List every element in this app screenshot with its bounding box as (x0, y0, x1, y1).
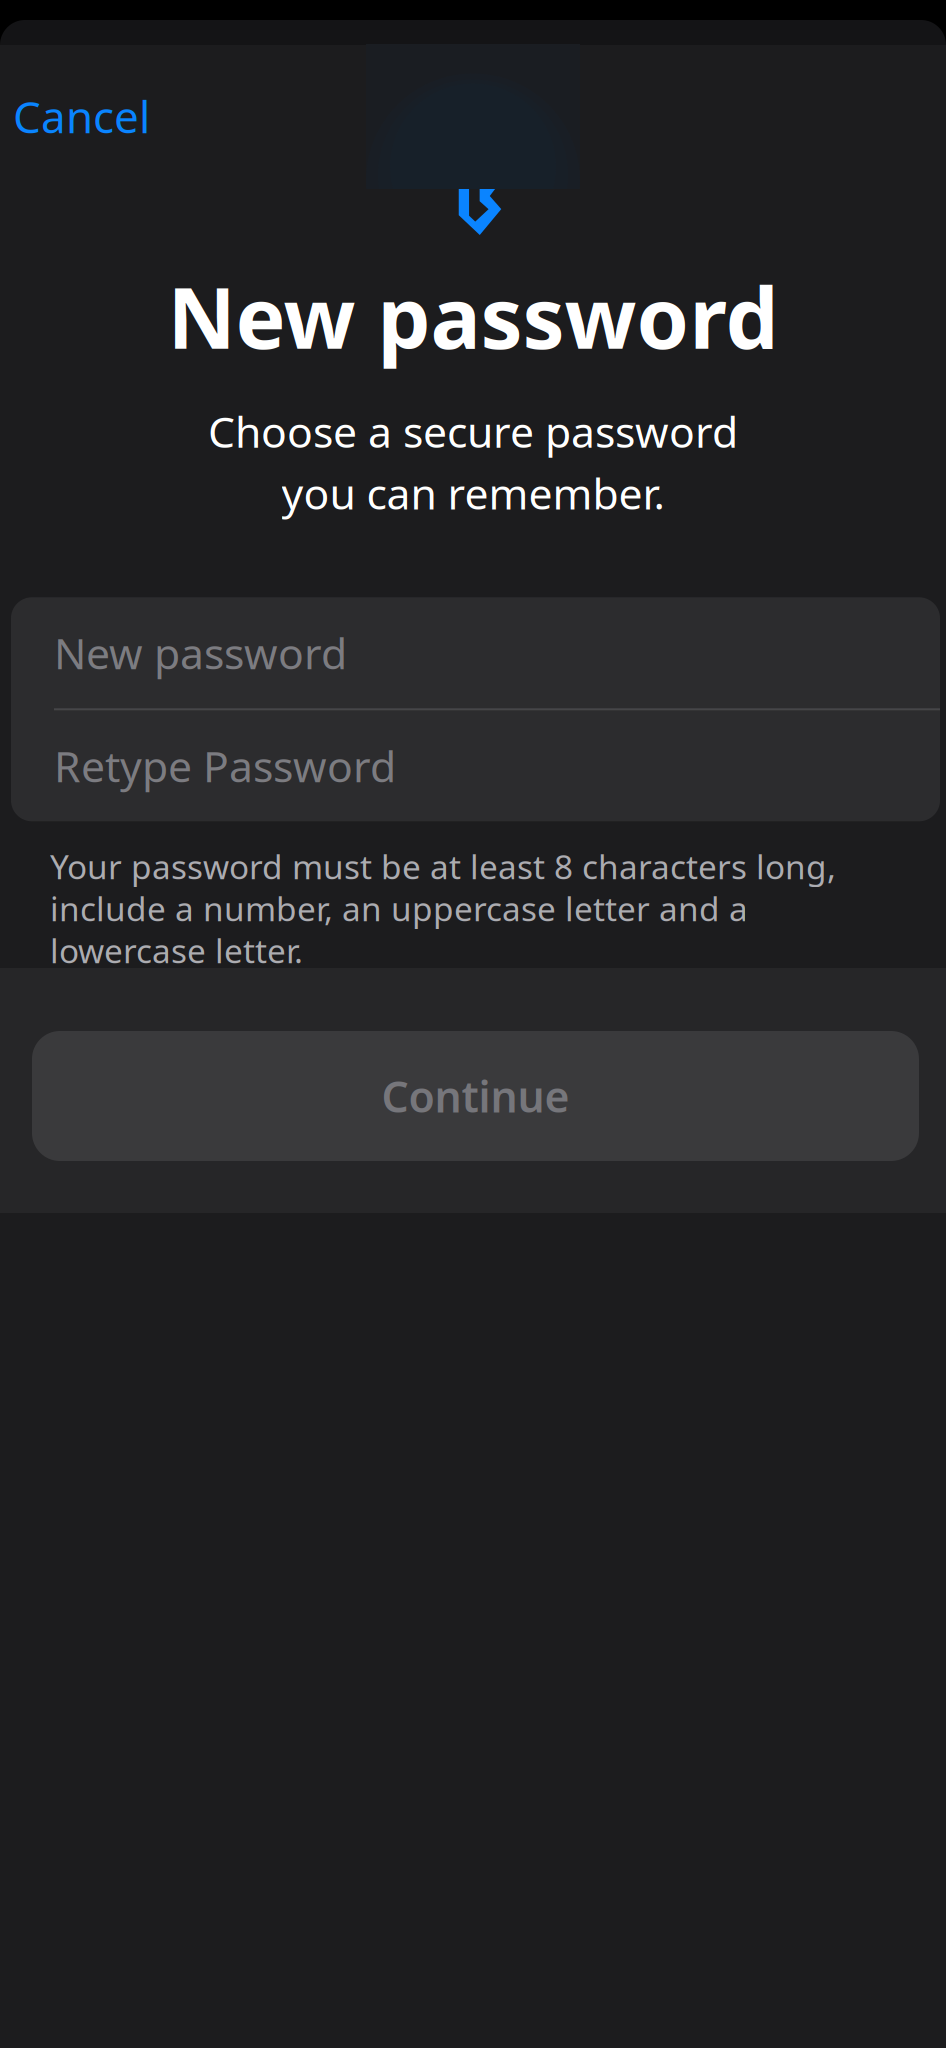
staticText: Continue (381, 1068, 569, 1124)
staticText: you can remember. (281, 465, 664, 521)
staticText: New password (54, 624, 347, 681)
button[interactable]: Retype Password (11, 710, 940, 821)
button[interactable]: New password (11, 597, 940, 708)
staticText: Your password must be at least 8 charact… (50, 844, 836, 888)
staticText: Cancel (13, 87, 150, 145)
staticText: Choose a secure password (208, 403, 738, 460)
button[interactable]: Continue (0, 1031, 946, 1161)
staticText: Retype Password (54, 737, 396, 794)
staticText: lowercase letter. (50, 928, 303, 972)
button[interactable]: Cancel (0, 71, 172, 161)
staticText: include a number, an uppercase letter an… (50, 886, 748, 930)
staticText: New password (167, 260, 778, 372)
